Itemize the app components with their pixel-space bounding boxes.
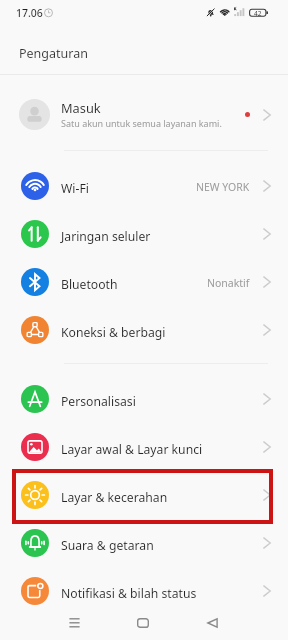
staticText: 42 (254, 9, 262, 18)
button[interactable]: Suara & getaran (0, 519, 288, 567)
button[interactable]: Notifikasi & bilah status (0, 567, 288, 615)
staticText: Notifikasi & bilah status (61, 585, 197, 602)
staticText: Satu akun untuk semua layanan kami. (61, 117, 222, 129)
staticText: Suara & getaran (61, 537, 154, 554)
staticText: Layar awal & Layar kunci (61, 441, 203, 458)
staticText: 17.06 (16, 6, 43, 20)
staticText: Personalisasi (61, 393, 136, 410)
button[interactable]: Personalisasi (0, 375, 288, 423)
staticText: Koneksi & berbagi (61, 324, 166, 341)
staticText: Nonaktif (207, 276, 250, 290)
button[interactable]: Koneksi & berbagi (0, 306, 288, 354)
button[interactable]: Layar & kecerahan (0, 471, 288, 519)
button[interactable]: Wi-Fi (0, 162, 288, 210)
button[interactable]: Layar awal & Layar kunci (0, 423, 288, 471)
staticText: Pengaturan (19, 45, 88, 62)
button[interactable]: Recent apps (51, 606, 97, 639)
staticText: Jaringan seluler (61, 228, 151, 245)
staticText: Wi-Fi (61, 180, 89, 197)
staticText: Masuk (61, 99, 101, 116)
staticText: NEW YORK (196, 180, 250, 194)
staticText: Bluetooth (61, 276, 118, 293)
button[interactable]: Back (189, 606, 235, 639)
button[interactable]: Masuk (0, 77, 288, 152)
staticText: Layar & kecerahan (61, 489, 168, 506)
button[interactable]: Home (120, 606, 166, 639)
button[interactable]: Jaringan seluler (0, 210, 288, 258)
button[interactable]: Bluetooth (0, 258, 288, 306)
